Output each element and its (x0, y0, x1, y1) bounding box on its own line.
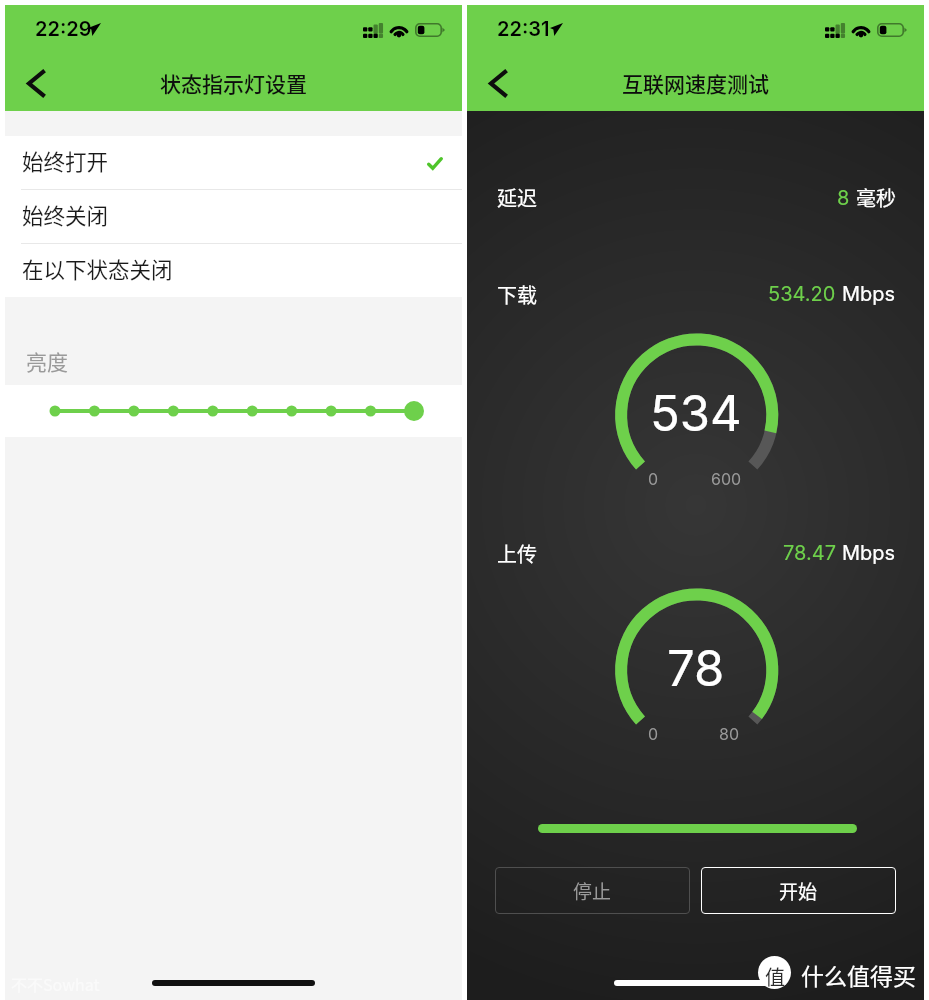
staticText: 22:31 (497, 17, 550, 41)
staticText: Mbps (842, 282, 896, 306)
staticText: 状态指示灯设置 (160, 68, 307, 98)
button[interactable]: 在以下状态关闭 (5, 244, 462, 297)
staticText: 互联网速度测试 (622, 68, 769, 98)
staticText: 延迟 (497, 183, 537, 212)
staticText: Mbps (842, 541, 896, 565)
staticText: 22:29 (35, 17, 92, 41)
staticText: 80 (719, 724, 739, 743)
staticText: 值 (765, 962, 785, 991)
staticText: 始终关闭 (22, 199, 109, 230)
button[interactable]: 开始 (701, 867, 896, 914)
staticText: 0 (648, 469, 659, 488)
button[interactable]: 停止 (495, 867, 690, 914)
staticText: 开始 (779, 877, 818, 905)
staticText: 亮度 (26, 346, 68, 376)
staticText: 始终打开 (22, 145, 109, 176)
button[interactable]: 始终关闭 (5, 190, 462, 243)
staticText: 毫秒 (856, 183, 896, 212)
button[interactable]: Brightness slider (5, 385, 462, 437)
staticText: 下载 (497, 280, 537, 309)
staticText: 什么值得买 (801, 958, 916, 991)
staticText: 78 (667, 639, 725, 698)
button[interactable]: Back (467, 55, 529, 111)
staticText: 78.47 (783, 541, 836, 565)
button[interactable]: 始终打开 (5, 136, 462, 189)
staticText: 上传 (497, 539, 537, 568)
staticText: 534 (650, 384, 742, 443)
staticText: 在以下状态关闭 (22, 253, 173, 284)
staticText: 8 (837, 186, 850, 210)
staticText: 534.20 (768, 282, 836, 306)
staticText: 0 (648, 724, 659, 743)
staticText: 停止 (573, 877, 612, 905)
button[interactable]: Back (5, 55, 67, 111)
staticText: 600 (711, 469, 742, 488)
